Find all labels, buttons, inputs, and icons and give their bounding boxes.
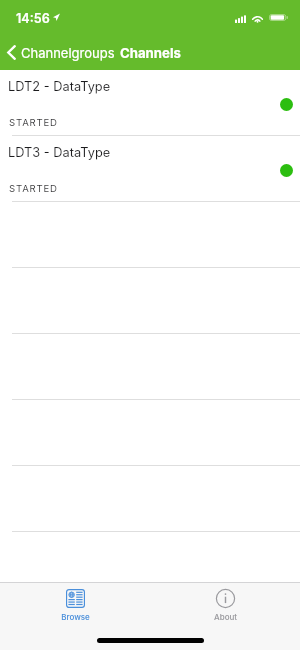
staticText: LDT3 - DataType (8, 145, 111, 160)
button[interactable]: Back (0, 41, 123, 65)
other: Back (7, 45, 16, 60)
button[interactable]: About (196, 583, 255, 626)
staticText: Channelgroups (21, 45, 115, 61)
staticText: Browse (61, 612, 90, 622)
staticText: STARTED (9, 117, 58, 129)
staticText: About (214, 612, 237, 622)
button[interactable]: LDT3 - DataType (0, 136, 300, 202)
staticText: STARTED (9, 183, 58, 195)
staticText: 14:56 (16, 11, 50, 26)
button[interactable]: Browse (43, 583, 108, 626)
button[interactable]: LDT2 - DataType (0, 70, 300, 136)
staticText: Channels (120, 45, 181, 61)
staticText: LDT2 - DataType (8, 79, 111, 94)
